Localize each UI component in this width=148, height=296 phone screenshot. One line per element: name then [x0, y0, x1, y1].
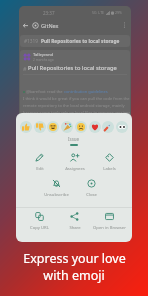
staticText: contribution guidelines: [64, 89, 108, 94]
staticText: @barefoot read the: [26, 89, 64, 94]
staticText: Issue: [68, 136, 80, 142]
button[interactable]: React with heart: [89, 121, 101, 133]
staticText: with emoji: [43, 267, 105, 284]
button[interactable]: Close: [74, 176, 109, 198]
button[interactable]: React with thumbs down: [34, 121, 46, 133]
staticText: Talleyrand: [33, 52, 54, 58]
staticText: Pull Repositories to local storage: [41, 38, 120, 45]
button[interactable]: React with confused: [75, 121, 87, 133]
button[interactable]: React with eyes: [116, 121, 128, 133]
staticText: 23:37: [43, 10, 55, 16]
staticText: Labels: [103, 166, 116, 172]
button[interactable]: React with thumbs up: [20, 121, 32, 133]
button[interactable]: Open in Browser: [92, 209, 127, 231]
staticText: remote repository to the local android s…: [23, 103, 125, 108]
staticText: Edit: [36, 166, 44, 172]
button[interactable]: Assignees: [57, 150, 92, 172]
staticText: GitNex: [41, 22, 59, 29]
staticText: Express your love: [23, 250, 126, 267]
staticText: Close: [86, 192, 97, 198]
button[interactable]: React with laugh: [47, 121, 59, 133]
staticText: 2 months ago: [33, 58, 54, 62]
button[interactable]: Share: [57, 209, 92, 231]
staticText: because some tools rely on local files t…: [23, 110, 130, 115]
button[interactable]: Unsubscribe: [39, 176, 74, 198]
staticText: 5G LTE: [92, 10, 105, 15]
staticText: Assignees: [65, 166, 85, 172]
staticText: Unsubscribe: [44, 192, 69, 198]
staticText: #: [23, 65, 28, 72]
button[interactable]: Copy URL: [22, 209, 57, 231]
button[interactable]: React with party popper: [61, 121, 73, 133]
staticText: 29%: [115, 10, 122, 15]
staticText: I think it would be great if you can pul…: [23, 96, 130, 101]
button[interactable]: Labels: [92, 150, 127, 172]
staticText: Copy URL: [30, 225, 49, 231]
staticText: Share: [69, 225, 81, 231]
staticText: Pull Repositories to local storage: [28, 64, 117, 72]
button[interactable]: React with rocket: [102, 121, 114, 133]
button[interactable]: Edit: [22, 150, 57, 172]
staticText: Open in Browser: [93, 225, 126, 231]
staticText: #1319: [24, 38, 39, 45]
